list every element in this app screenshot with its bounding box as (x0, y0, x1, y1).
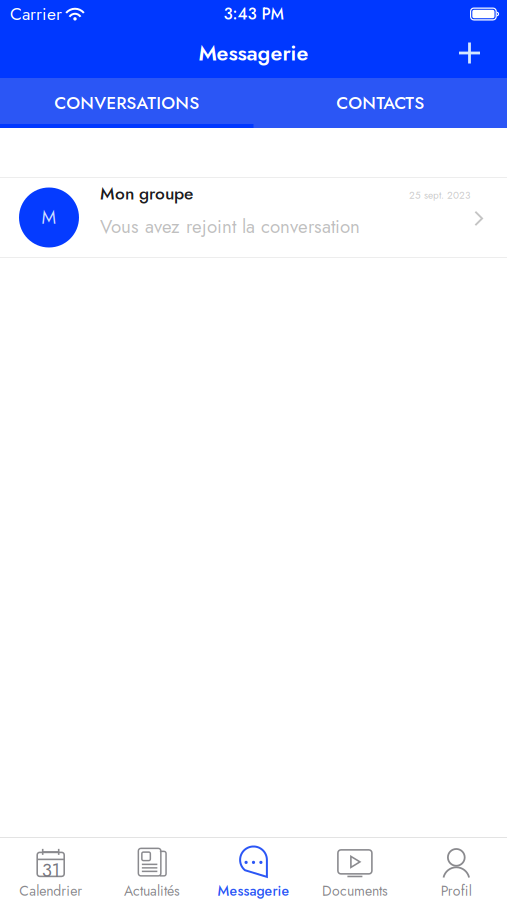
button[interactable]: Documents (304, 838, 406, 900)
button[interactable]: M (0, 177, 507, 258)
staticText: 25 sept. 2023 (409, 188, 470, 202)
staticText: Messagerie (198, 38, 308, 68)
staticText: Vous avez rejoint la conversation (100, 213, 360, 240)
button[interactable]: Messagerie (203, 838, 304, 900)
staticText: CONTACTS (336, 90, 424, 115)
staticText: Calendrier (19, 881, 82, 900)
button[interactable]: New conversation (440, 28, 507, 77)
button[interactable]: CONTACTS (253, 78, 507, 128)
staticText: CONVERSATIONS (54, 90, 199, 115)
button[interactable]: Actualités (101, 838, 203, 900)
button[interactable]: 31 (0, 838, 101, 900)
button[interactable]: Profil (406, 838, 507, 900)
staticText: Profil (441, 881, 472, 900)
button[interactable]: CONVERSATIONS (0, 78, 253, 128)
staticText: Actualités (124, 881, 180, 900)
staticText: Mon groupe (100, 181, 193, 206)
staticText: Carrier (10, 1, 62, 26)
staticText: Messagerie (217, 881, 289, 900)
staticText: M (41, 204, 56, 230)
staticText: Documents (322, 881, 388, 900)
staticText: 3:43 PM (223, 2, 283, 25)
staticText: 31 (42, 857, 60, 884)
